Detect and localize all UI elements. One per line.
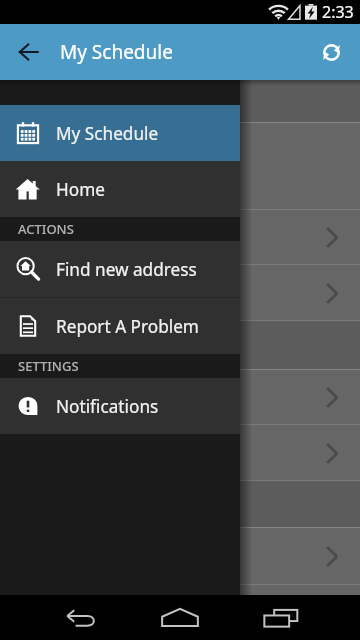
staticText: Notifications bbox=[56, 395, 159, 418]
button[interactable]: Home bbox=[0, 161, 240, 217]
button[interactable]: Find new address bbox=[0, 241, 240, 297]
button[interactable]: Back bbox=[55, 595, 103, 640]
button[interactable]: Home bbox=[156, 595, 204, 640]
button[interactable] bbox=[0, 123, 360, 210]
staticText: Home bbox=[56, 178, 105, 201]
button[interactable] bbox=[0, 425, 360, 481]
staticText: Report A Problem bbox=[56, 315, 199, 338]
staticText: ACTIONS bbox=[18, 220, 74, 238]
button[interactable]: Back bbox=[11, 35, 45, 69]
button[interactable] bbox=[0, 370, 360, 425]
staticText: 2:33 bbox=[322, 1, 354, 23]
button[interactable]: Refresh bbox=[315, 36, 347, 68]
staticText: My Schedule bbox=[60, 39, 173, 65]
button[interactable] bbox=[0, 265, 360, 321]
button[interactable]: Notifications bbox=[0, 378, 240, 434]
staticText: My Schedule bbox=[56, 122, 159, 145]
button[interactable]: My Schedule bbox=[0, 105, 240, 161]
button[interactable] bbox=[0, 528, 360, 585]
staticText: SETTINGS bbox=[18, 357, 79, 375]
button[interactable] bbox=[0, 210, 360, 265]
button[interactable]: Report A Problem bbox=[0, 298, 240, 354]
staticText: Find new address bbox=[56, 258, 197, 281]
button[interactable]: Recents bbox=[257, 595, 305, 640]
